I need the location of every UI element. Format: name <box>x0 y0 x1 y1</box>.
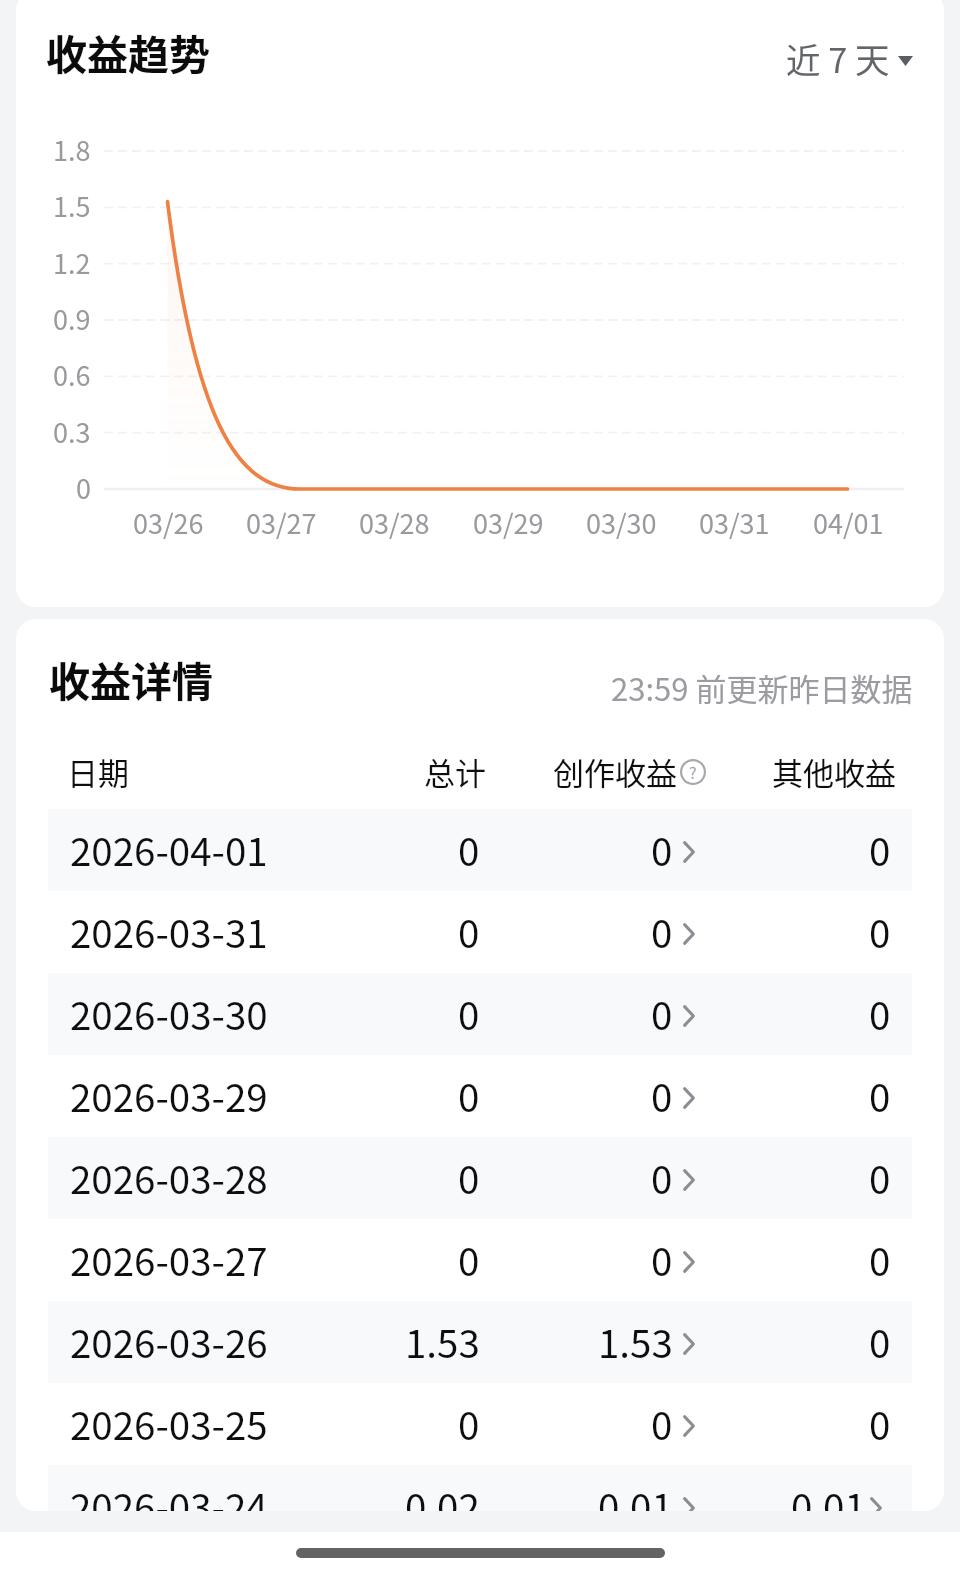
staticText: 0 <box>651 1395 673 1451</box>
staticText: 03/28 <box>359 503 430 542</box>
staticText: 2026-03-31 <box>70 903 268 959</box>
staticText: 其他收益 <box>772 749 896 794</box>
staticText: 2026-04-01 <box>70 821 268 877</box>
button[interactable]: 近 7 天 <box>762 19 928 73</box>
button[interactable]: 2026-03-31 <box>48 891 912 973</box>
staticText: 日期 <box>67 749 129 794</box>
staticText: 0 <box>869 903 891 959</box>
staticText: 0 <box>869 821 891 877</box>
button[interactable]: 0 <box>518 1219 698 1301</box>
staticText: 2026-03-30 <box>70 985 268 1041</box>
staticText: 0 <box>458 985 480 1041</box>
staticText: 2026-03-29 <box>70 1067 268 1123</box>
staticText: 2026-03-25 <box>70 1395 268 1451</box>
button[interactable]: 0 <box>518 1383 698 1465</box>
staticText: 2026-03-27 <box>70 1231 268 1287</box>
staticText: 收益趋势 <box>46 22 210 81</box>
staticText: 2026-03-26 <box>70 1313 268 1369</box>
staticText: 0 <box>651 1231 673 1287</box>
button[interactable]: 0 <box>518 973 698 1055</box>
staticText: 03/26 <box>133 503 204 542</box>
staticText: 0 <box>869 1067 891 1123</box>
staticText: ? <box>689 760 697 783</box>
staticText: 0.6 <box>53 355 91 394</box>
staticText: 0 <box>76 468 91 507</box>
button[interactable]: 2026-03-24 <box>48 1465 912 1511</box>
staticText: 03/30 <box>586 503 657 542</box>
staticText: 0 <box>869 985 891 1041</box>
staticText: 04/01 <box>813 503 884 542</box>
staticText: 收益详情 <box>49 649 213 708</box>
button[interactable]: 1.53 <box>518 1301 698 1383</box>
staticText: 总计 <box>424 749 486 794</box>
staticText: 0 <box>651 821 673 877</box>
staticText: 0.01 <box>791 1477 866 1511</box>
staticText: 1.2 <box>53 243 91 282</box>
staticText: 2026-03-24 <box>70 1477 268 1511</box>
button[interactable]: 0 <box>518 809 698 891</box>
button[interactable]: 2026-03-29 <box>48 1055 912 1137</box>
button[interactable]: 2026-03-26 <box>48 1301 912 1383</box>
staticText: 0.01 <box>598 1477 673 1511</box>
staticText: 0 <box>458 1231 480 1287</box>
button[interactable]: 2026-03-28 <box>48 1137 912 1219</box>
button[interactable]: 0.01 <box>518 1465 698 1511</box>
button[interactable]: 0 <box>518 1055 698 1137</box>
staticText: 1.5 <box>53 186 91 225</box>
staticText: 0 <box>458 1067 480 1123</box>
staticText: 0 <box>869 1313 891 1369</box>
staticText: 0 <box>651 1067 673 1123</box>
button[interactable]: 2026-03-25 <box>48 1383 912 1465</box>
button[interactable]: 0 <box>518 891 698 973</box>
staticText: 0.3 <box>53 412 91 451</box>
staticText: 03/27 <box>246 503 317 542</box>
staticText: 1.8 <box>53 130 91 169</box>
button[interactable]: 2026-03-30 <box>48 973 912 1055</box>
staticText: 0 <box>651 903 673 959</box>
staticText: 0 <box>869 1231 891 1287</box>
staticText: 近 7 天 <box>786 33 890 83</box>
button[interactable]: 0 <box>518 1137 698 1219</box>
button[interactable]: 创作收益说明 <box>680 759 706 785</box>
staticText: 03/29 <box>473 503 544 542</box>
staticText: 1.53 <box>598 1313 673 1369</box>
button[interactable]: 2026-03-27 <box>48 1219 912 1301</box>
staticText: 0.9 <box>53 299 91 338</box>
staticText: 0 <box>651 1149 673 1205</box>
staticText: 0 <box>458 903 480 959</box>
button[interactable]: 0.01 <box>738 1465 910 1511</box>
staticText: 0 <box>458 1395 480 1451</box>
staticText: 1.53 <box>405 1313 480 1369</box>
staticText: 0 <box>869 1395 891 1451</box>
staticText: 2026-03-28 <box>70 1149 268 1205</box>
staticText: 0 <box>869 1149 891 1205</box>
staticText: 03/31 <box>699 503 770 542</box>
button[interactable]: 2026-04-01 <box>48 809 912 891</box>
staticText: 0.02 <box>405 1477 480 1511</box>
staticText: 创作收益 <box>553 749 677 794</box>
staticText: 23:59 前更新昨日数据 <box>611 665 913 710</box>
staticText: 0 <box>651 985 673 1041</box>
staticText: 0 <box>458 1149 480 1205</box>
staticText: 0 <box>458 821 480 877</box>
